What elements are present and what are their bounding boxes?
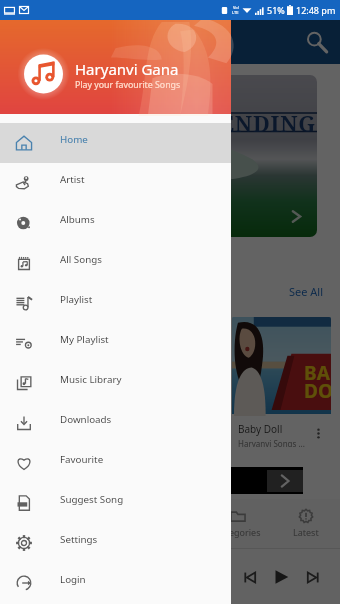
button[interactable]: TRENDING	[23, 75, 317, 237]
staticText: Haryanvi Gana	[75, 59, 179, 79]
staticText: Settings	[60, 533, 98, 546]
other: More trending	[290, 210, 303, 223]
staticText: 51%	[267, 4, 285, 16]
staticText: Home	[21, 526, 47, 538]
button[interactable]: Trending	[68, 499, 136, 548]
button[interactable]: Home	[0, 499, 68, 548]
staticText: Home	[60, 133, 88, 146]
staticText: Baby Doll	[238, 422, 283, 436]
staticText: Baby Doll	[16, 422, 61, 436]
staticText: Vol	[233, 5, 239, 10]
button[interactable]: Suggest Song	[0, 483, 231, 523]
button[interactable]: See All	[289, 284, 324, 299]
button[interactable]: Previous	[234, 562, 264, 592]
staticText: Downloads	[60, 413, 112, 426]
staticText: BA DO	[304, 360, 331, 404]
staticText: BA DO	[82, 360, 109, 404]
button[interactable]: Next	[298, 562, 328, 592]
button[interactable]: Categories	[204, 499, 272, 548]
button[interactable]: Albums	[0, 203, 231, 243]
button[interactable]: Artist	[0, 163, 231, 203]
button[interactable]: Login	[0, 563, 231, 603]
staticText: Haryanvi Songs ...	[238, 438, 305, 447]
staticText: Playlist	[60, 293, 93, 306]
staticText: 12:48 pm	[296, 4, 336, 16]
staticText: Artist	[60, 173, 85, 186]
staticText: Baby Doll	[58, 563, 103, 577]
staticText: Favourite	[60, 453, 104, 466]
staticText: Categories	[215, 526, 261, 538]
button[interactable]: Downloads	[0, 403, 231, 443]
button[interactable]: BA DO	[10, 317, 109, 447]
staticText: TRENDING	[188, 108, 317, 138]
button[interactable]: My Playlist	[0, 323, 231, 363]
staticText: Haryanvi Songs	[58, 579, 117, 590]
button[interactable]: All Songs	[0, 243, 231, 283]
button[interactable]: Latest	[272, 499, 340, 548]
button[interactable]: Music Library	[0, 363, 231, 403]
staticText: Play your favourite Songs	[75, 79, 181, 91]
button[interactable]: Settings	[0, 523, 231, 563]
button[interactable]: BA DO	[232, 317, 331, 447]
button[interactable]: Play	[266, 562, 296, 592]
staticText: Login	[60, 573, 86, 586]
staticText: Latest	[293, 526, 319, 538]
staticText: Suggest Song	[60, 493, 124, 506]
staticText: All Songs	[60, 253, 102, 266]
button[interactable]: Home	[0, 123, 231, 163]
button[interactable]: Favourite	[0, 443, 231, 483]
button[interactable]: Playlist	[0, 283, 231, 323]
staticText: LTE	[232, 10, 239, 15]
staticText: Albums	[60, 213, 95, 226]
staticText: My Playlist	[60, 333, 109, 346]
button[interactable]: Search	[305, 30, 329, 54]
staticText: Music Library	[60, 373, 122, 386]
other: More options	[313, 428, 324, 439]
